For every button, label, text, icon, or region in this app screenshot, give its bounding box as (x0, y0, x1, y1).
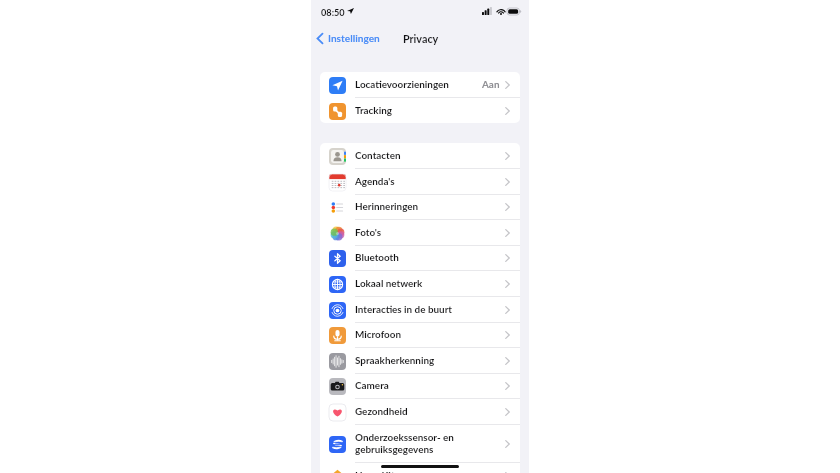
staticText: Privacy (403, 32, 439, 45)
button[interactable]: Spraakherkenning (320, 348, 520, 374)
button[interactable]: Foto's (320, 220, 520, 246)
button[interactable]: Interacties in de buurt (320, 297, 520, 323)
staticText: 08:50 (321, 7, 345, 18)
button[interactable]: HomeKit (320, 463, 520, 473)
button[interactable]: Agenda's (320, 169, 520, 195)
button[interactable]: Camera (320, 373, 520, 399)
button[interactable]: Tracking (320, 98, 520, 123)
button[interactable]: Contacten (320, 143, 520, 169)
staticText: Instellingen (328, 32, 380, 44)
staticText: Bluetooth (355, 251, 399, 263)
staticText: Gezondheid (355, 405, 408, 417)
staticText: Aan (482, 78, 500, 90)
staticText: HomeKit (355, 469, 395, 473)
staticText: Locatievoorzieningen (355, 78, 449, 90)
staticText: Herinneringen (355, 200, 419, 212)
staticText: Onderzoekssensor- en gebruiksgegevens (355, 431, 505, 455)
staticText: Foto's (355, 226, 382, 238)
staticText: Spraakherkenning (355, 354, 435, 366)
staticText: Tracking (355, 104, 392, 116)
staticText: Microfoon (355, 328, 402, 340)
staticText: Interacties in de buurt (355, 303, 453, 315)
button[interactable]: Locatievoorzieningen (320, 72, 520, 98)
staticText: Lokaal netwerk (355, 277, 423, 289)
button[interactable]: Microfoon (320, 322, 520, 348)
button[interactable]: Lokaal netwerk (320, 271, 520, 297)
staticText: Camera (355, 379, 389, 391)
button[interactable]: Bluetooth (320, 245, 520, 271)
button[interactable]: Herinneringen (320, 194, 520, 220)
staticText: Agenda's (355, 175, 395, 187)
button[interactable]: Terug naar Instellingen (311, 30, 384, 46)
button[interactable]: Onderzoekssensor- en gebruiksgegevens (320, 425, 520, 463)
button[interactable]: Gezondheid (320, 399, 520, 425)
staticText: Contacten (355, 149, 401, 161)
